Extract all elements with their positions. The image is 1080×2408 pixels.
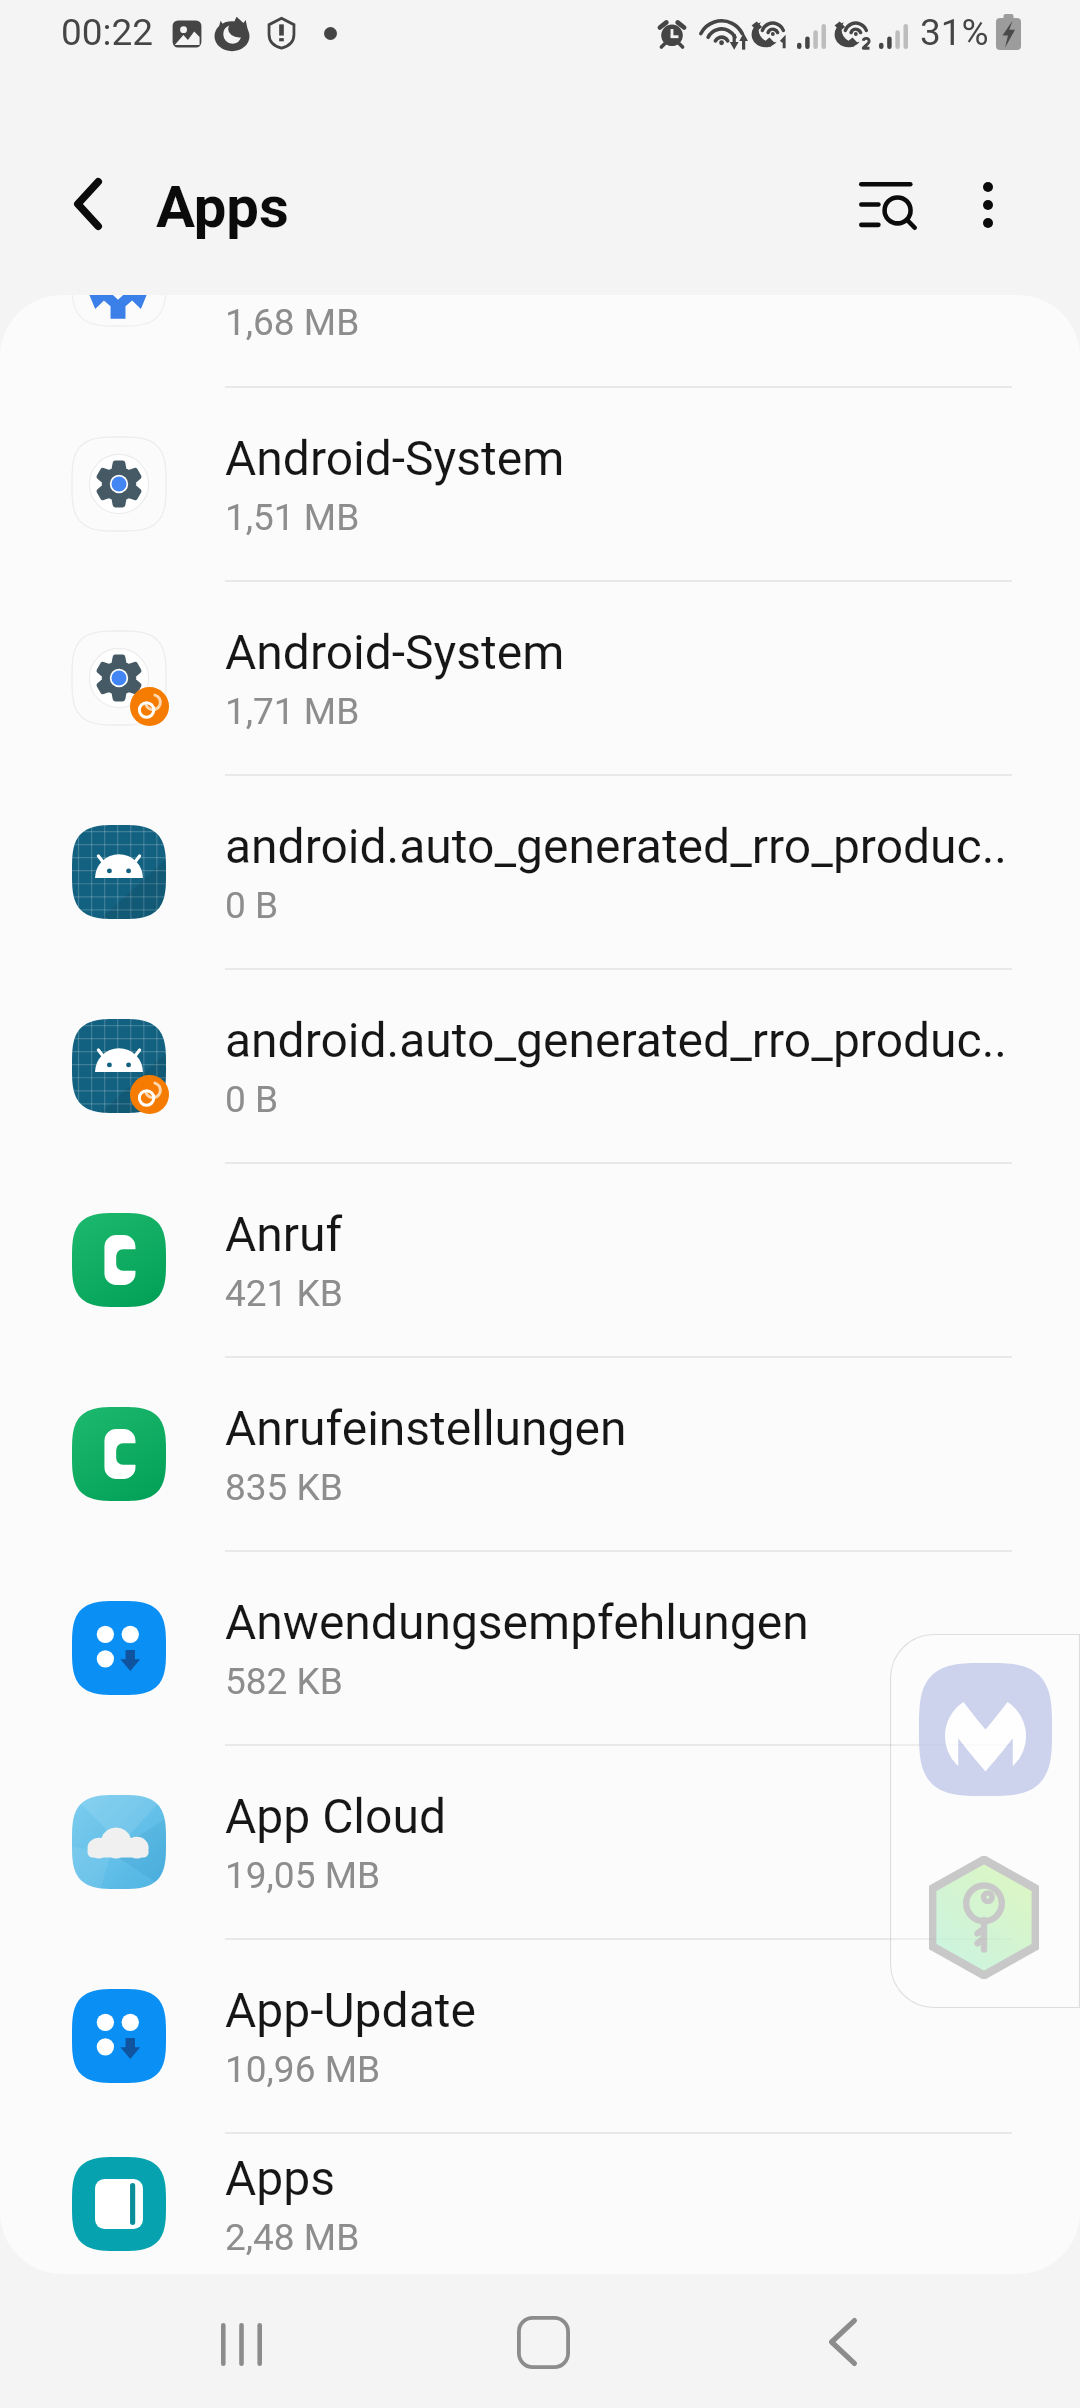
staticText: App Cloud (225, 1788, 446, 1844)
button[interactable]: Floating shortcuts (890, 1634, 1080, 2008)
staticText: 421 KB (225, 1272, 343, 1315)
staticText: 10,96 MB (225, 2048, 380, 2091)
button[interactable]: Search (834, 151, 942, 259)
button[interactable]: Back (790, 2289, 896, 2395)
button[interactable]: Android-System (0, 388, 1080, 580)
button[interactable]: More options (934, 151, 1042, 259)
staticText: 1,71 MB (225, 690, 360, 733)
staticText: 1,51 MB (225, 496, 360, 539)
staticText: 31% (920, 11, 989, 54)
button[interactable]: App Cloud (0, 1746, 1080, 1938)
staticText: 0 B (225, 1078, 279, 1121)
staticText: 00:22 (61, 11, 154, 54)
button[interactable]: android.auto_generated_rro_produc.. (0, 970, 1080, 1162)
staticText: android.auto_generated_rro_produc.. (225, 818, 1007, 874)
staticText: Apps (225, 2150, 335, 2206)
button[interactable]: Android-System (0, 582, 1080, 774)
staticText: android.auto_generated_rro_produc.. (225, 1012, 1007, 1068)
button[interactable]: Anwendungsempfehlungen (0, 1552, 1080, 1744)
staticText: App-Update (225, 1982, 476, 2038)
button[interactable]: App-Update (0, 1940, 1080, 2132)
staticText: 835 KB (225, 1466, 343, 1509)
staticText: 1,68 MB (225, 301, 360, 344)
button[interactable]: Recent apps (188, 2291, 294, 2397)
button[interactable]: Anrufeinstellungen (0, 1358, 1080, 1550)
staticText: Anrufeinstellungen (225, 1400, 627, 1456)
button[interactable]: android.auto_generated_rro_produc.. (0, 776, 1080, 968)
button[interactable]: Home (490, 2289, 596, 2395)
staticText: Android-System (225, 430, 565, 486)
staticText: Anwendungsempfehlungen (225, 1594, 809, 1650)
staticText: Android-System (225, 624, 565, 680)
button[interactable]: Anruf (0, 1164, 1080, 1356)
staticText: 582 KB (225, 1660, 343, 1703)
staticText: 2,48 MB (225, 2216, 360, 2259)
staticText: Apps (156, 173, 289, 241)
button[interactable]: Apps (0, 2134, 1080, 2274)
staticText: 0 B (225, 884, 279, 927)
staticText: 19,05 MB (225, 1854, 380, 1897)
button[interactable]: Back (34, 150, 142, 258)
staticText: Anruf (225, 1206, 343, 1262)
